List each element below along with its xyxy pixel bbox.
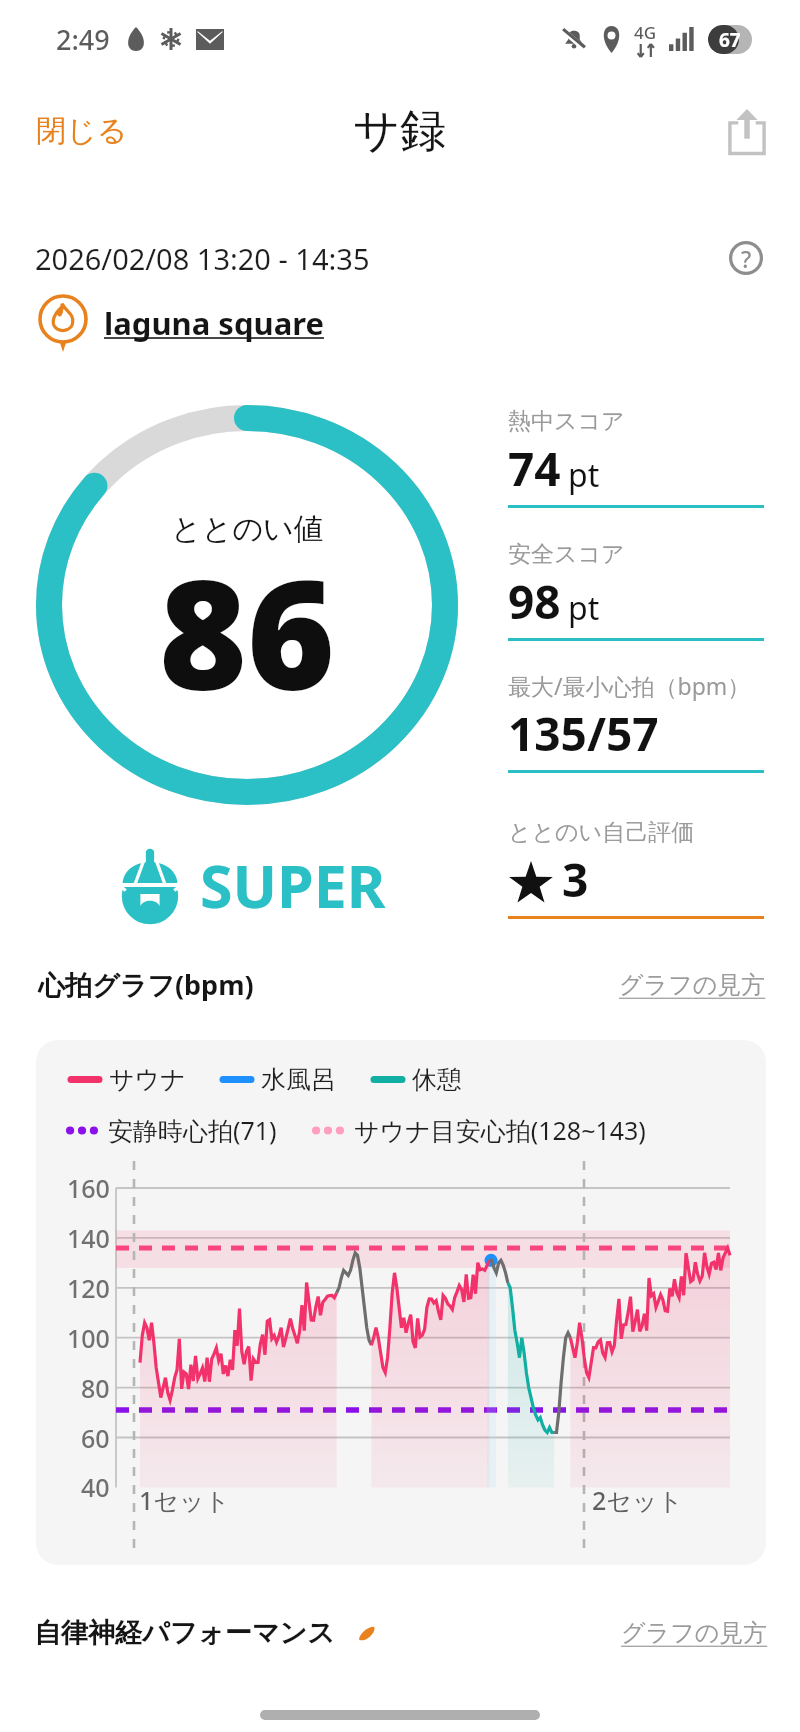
- staticText: 60: [81, 1421, 110, 1455]
- staticText: サウナ目安心拍(128~143): [354, 1113, 646, 1147]
- staticText: 閉じる: [36, 112, 128, 150]
- button[interactable]: グラフの見方: [619, 970, 766, 1000]
- staticText: 98: [508, 570, 561, 633]
- staticText: 2:49: [56, 21, 110, 58]
- staticText: 2セット: [592, 1483, 684, 1517]
- staticText: 4G: [634, 21, 657, 44]
- button[interactable]: Help: [720, 232, 772, 284]
- staticText: 140: [67, 1221, 110, 1255]
- staticText: 67: [719, 27, 741, 53]
- staticText: 40: [81, 1470, 110, 1504]
- staticText: ?: [741, 243, 752, 274]
- staticText: 水風呂: [261, 1064, 336, 1095]
- staticText: laguna square: [104, 302, 333, 344]
- staticText: グラフの見方: [621, 1618, 768, 1648]
- staticText: pt: [568, 453, 600, 497]
- staticText: 86: [159, 529, 335, 733]
- staticText: 135/57: [508, 702, 659, 765]
- staticText: 熱中スコア: [508, 407, 625, 436]
- staticText: 休憩: [412, 1064, 462, 1095]
- staticText: 120: [67, 1271, 110, 1305]
- staticText: サウナ: [109, 1064, 186, 1095]
- button[interactable]: 閉じる: [22, 102, 142, 160]
- button[interactable]: Share: [718, 102, 776, 160]
- staticText: 安全スコア: [508, 540, 625, 569]
- staticText: 最大/最小心拍（bpm）: [508, 670, 751, 701]
- staticText: ととのい値: [171, 510, 324, 548]
- staticText: 1セット: [139, 1483, 231, 1517]
- staticText: サ録: [353, 102, 447, 160]
- staticText: ととのい自己評価: [508, 818, 695, 847]
- staticText: 心拍グラフ(bpm): [38, 966, 254, 1003]
- staticText: pt: [568, 586, 600, 630]
- staticText: 3: [562, 848, 589, 911]
- button[interactable]: グラフの見方: [621, 1618, 768, 1648]
- staticText: 80: [81, 1371, 110, 1405]
- staticText: 74: [508, 437, 561, 500]
- button[interactable]: laguna square: [38, 293, 333, 353]
- staticText: グラフの見方: [619, 970, 766, 1000]
- staticText: 安静時心拍(71): [108, 1113, 277, 1147]
- staticText: 160: [67, 1171, 110, 1205]
- staticText: SUPER: [200, 845, 386, 925]
- staticText: 2026/02/08 13:20 - 14:35: [35, 239, 370, 278]
- staticText: 自律神経パフォーマンス: [34, 1616, 335, 1650]
- staticText: 100: [67, 1321, 110, 1355]
